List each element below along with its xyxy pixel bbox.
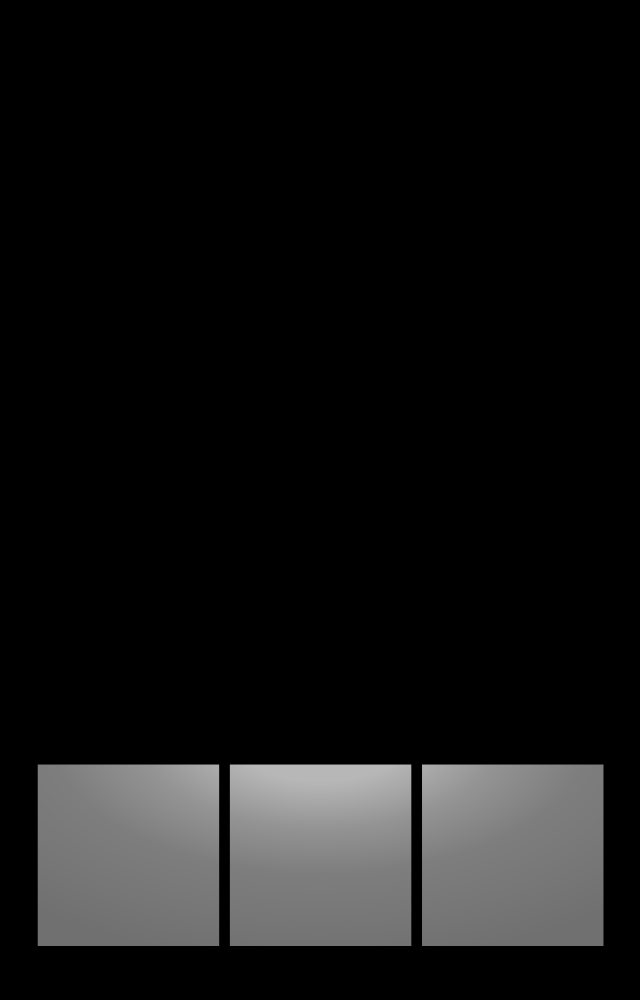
button[interactable]: Photo 1 [38, 764, 219, 946]
button[interactable]: Photo 3 [422, 764, 603, 946]
button[interactable]: Photo 2 [230, 764, 411, 946]
